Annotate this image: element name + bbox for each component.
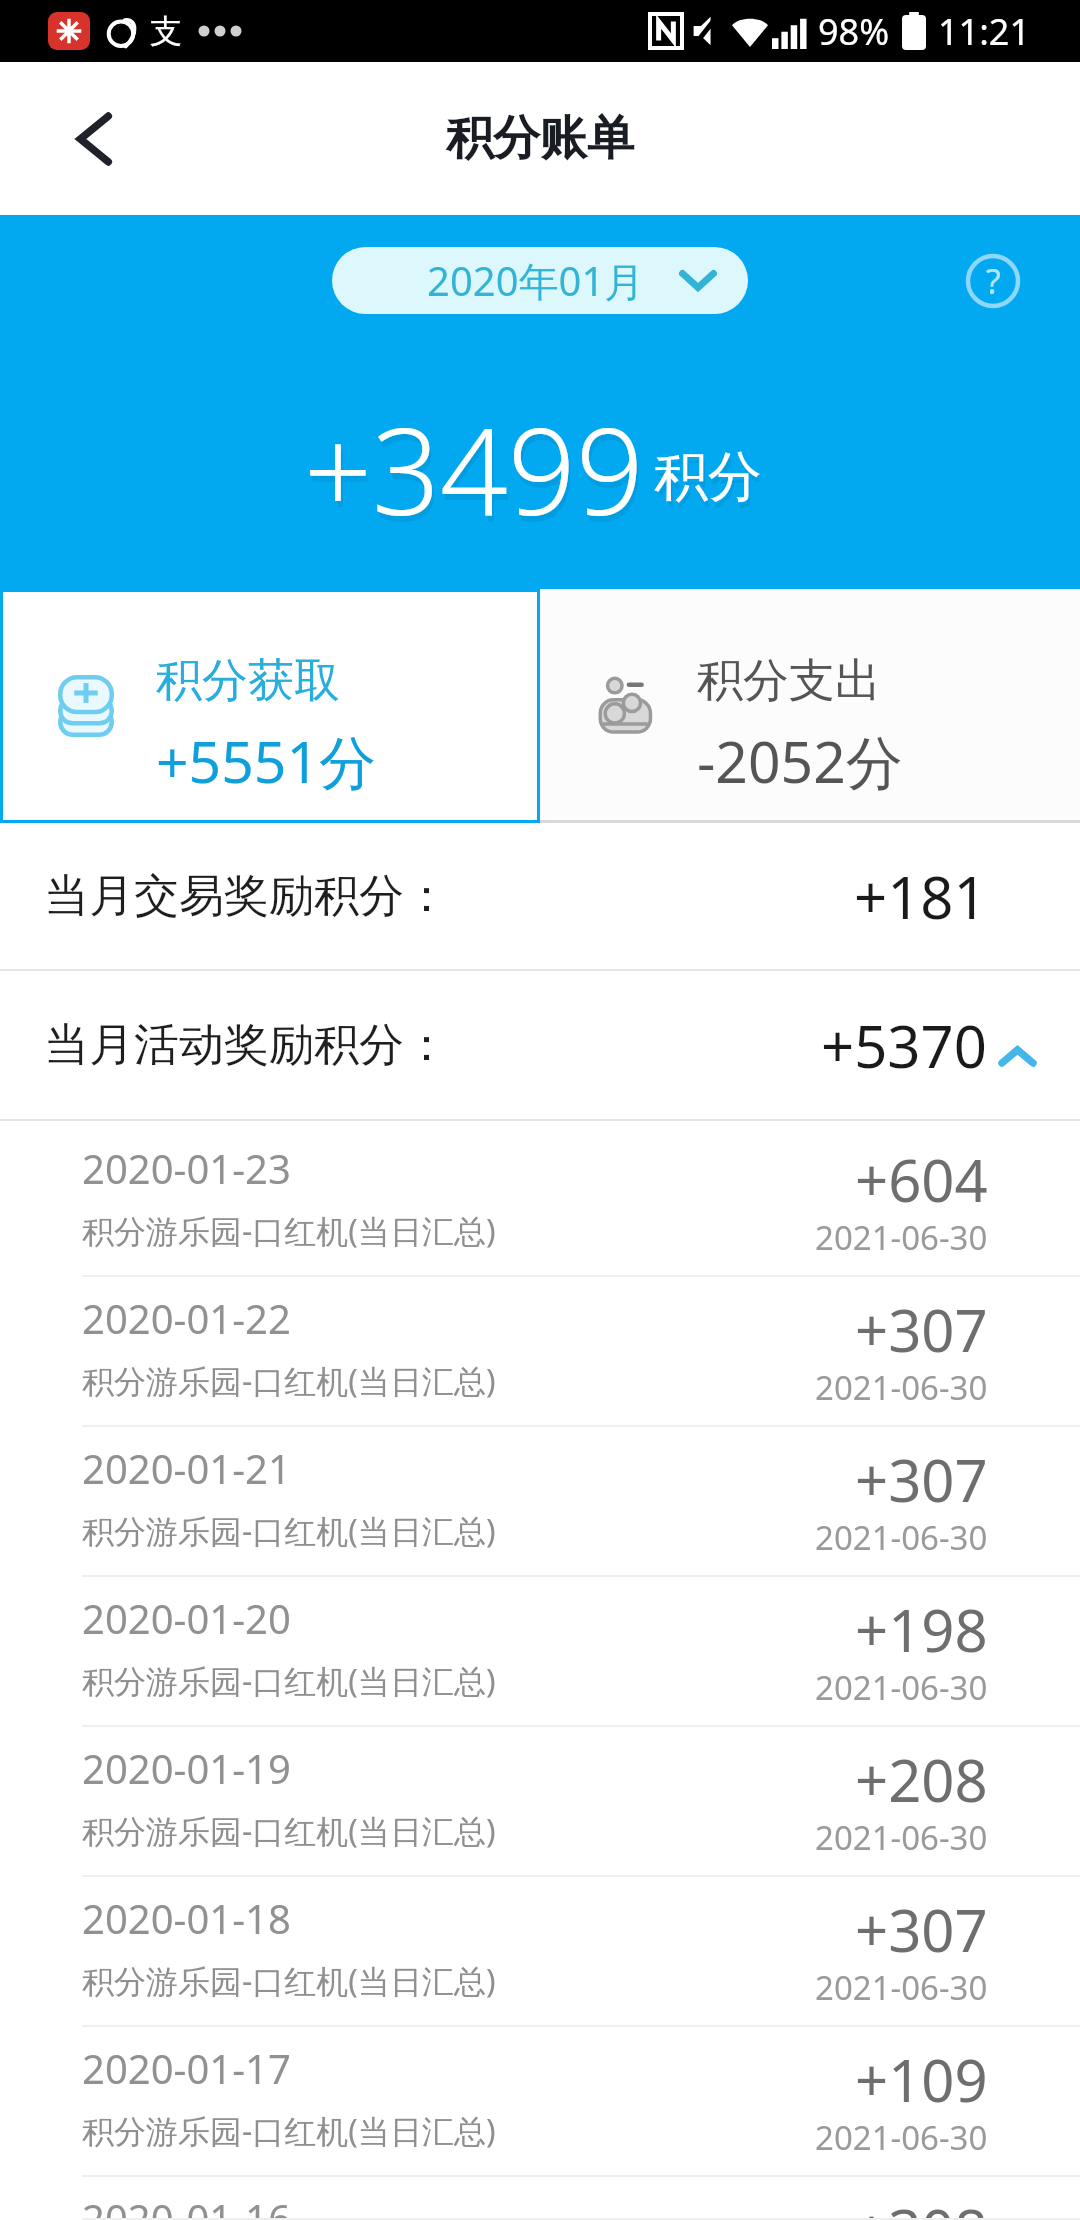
staticText: +3499 xyxy=(306,394,646,556)
staticText: 2020-01-16 xyxy=(82,2191,291,2220)
staticText: 积分游乐园-口红机(当日汇总) xyxy=(82,1509,496,1553)
button[interactable]: 当月交易奖励积分： xyxy=(0,823,1080,969)
staticText: +307 xyxy=(855,1290,988,1369)
staticText: ? xyxy=(986,258,1001,304)
staticText: +198 xyxy=(855,1590,988,1669)
staticText: 积分支出 xyxy=(697,652,881,710)
staticText: 2021-06-30 xyxy=(815,1365,988,1410)
staticText: 2020-01-20 xyxy=(82,1591,291,1645)
staticText: 积分 xyxy=(656,449,764,517)
button[interactable]: 当月活动奖励积分： xyxy=(0,971,1080,1119)
staticText: 2021-06-30 xyxy=(815,1965,988,2010)
button[interactable]: 2020-01-20 xyxy=(0,1577,1080,1727)
button[interactable]: 2020-01-17 xyxy=(0,2027,1080,2177)
staticText: 2021-06-30 xyxy=(815,2115,988,2160)
staticText: 2021-06-30 xyxy=(815,1515,988,1560)
button[interactable]: 2020年01月 xyxy=(332,247,748,314)
staticText: 2021-06-30 xyxy=(815,1815,988,1860)
staticText: 积分 xyxy=(654,443,762,511)
staticText: 积分游乐园-口红机(当日汇总) xyxy=(82,1359,496,1403)
button[interactable]: 2020-01-18 xyxy=(0,1877,1080,2027)
staticText: 支 xyxy=(150,11,182,51)
staticText: 2020-01-21 xyxy=(82,1441,291,1495)
staticText: 积分游乐园-口红机(当日汇总) xyxy=(82,1809,496,1853)
staticText: 2020-01-22 xyxy=(82,1291,291,1345)
staticText: 98% xyxy=(818,7,890,56)
staticText: -2052分 xyxy=(697,722,903,800)
staticText: 2020-01-17 xyxy=(82,2041,291,2095)
staticText: 2021-06-30 xyxy=(815,1215,988,1260)
button[interactable]: 2020-01-22 xyxy=(0,1277,1080,1427)
button[interactable]: Help xyxy=(966,254,1020,308)
staticText: 积分账单 xyxy=(446,109,634,168)
staticText: +307 xyxy=(855,1890,988,1969)
staticText: +5370 xyxy=(821,1006,987,1085)
staticText: 积分游乐园-口红机(当日汇总) xyxy=(82,1659,496,1703)
button[interactable]: Back xyxy=(68,111,124,167)
staticText: +181 xyxy=(854,857,987,936)
staticText: 积分游乐园-口红机(当日汇总) xyxy=(82,1209,496,1253)
staticText: 2020-01-18 xyxy=(82,1891,291,1945)
staticText: +604 xyxy=(855,1140,988,1219)
staticText: 积分游乐园-口红机(当日汇总) xyxy=(82,1959,496,2003)
button[interactable]: 2020-01-23 xyxy=(0,1127,1080,1277)
button[interactable]: 2020-01-21 xyxy=(0,1427,1080,1577)
staticText: +5551分 xyxy=(156,722,377,800)
staticText: +307 xyxy=(855,1440,988,1519)
staticText: 2021-06-30 xyxy=(815,1665,988,1710)
button[interactable]: 积分支出 xyxy=(540,589,1080,823)
staticText: 11:21 xyxy=(938,7,1031,56)
staticText: 积分游乐园-口红机(当日汇总) xyxy=(82,2109,496,2153)
staticText: +308 xyxy=(855,2190,988,2220)
staticText: 2020年01月 xyxy=(427,253,645,308)
button[interactable]: 积分获取 xyxy=(3,592,537,820)
staticText: 积分获取 xyxy=(156,652,340,710)
staticText: 2020-01-23 xyxy=(82,1141,291,1195)
staticText: 2020-01-19 xyxy=(82,1741,291,1795)
staticText: 当月交易奖励积分： xyxy=(44,868,449,925)
button[interactable]: 2020-01-16 xyxy=(0,2177,1080,2220)
button[interactable]: 2020-01-19 xyxy=(0,1727,1080,1877)
staticText: +3499 xyxy=(304,388,644,550)
staticText: 当月活动奖励积分： xyxy=(44,1017,449,1074)
staticText: +208 xyxy=(855,1740,988,1819)
staticText: +109 xyxy=(855,2040,988,2119)
